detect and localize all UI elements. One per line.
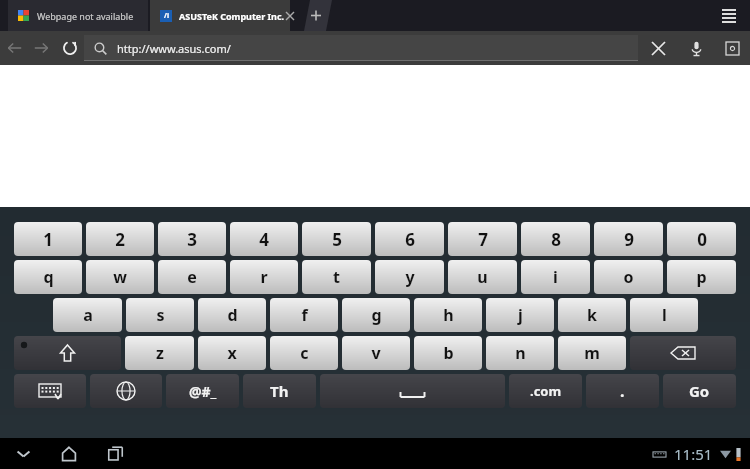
staticText: n (515, 342, 526, 364)
button[interactable]: Change language (90, 374, 162, 408)
button[interactable]: 5 (302, 222, 371, 256)
button[interactable]: 0 (667, 222, 736, 256)
button[interactable]: g (342, 298, 410, 332)
button[interactable]: x (198, 336, 266, 370)
button[interactable]: 4 (230, 222, 298, 256)
button[interactable]: b (414, 336, 482, 370)
staticText: 7 (478, 228, 488, 251)
staticText: b (443, 342, 454, 364)
button[interactable]: e (158, 260, 226, 294)
button[interactable]: Menu (718, 5, 740, 27)
staticText: 11:51 (674, 444, 713, 464)
staticText: f (301, 304, 308, 326)
button[interactable]: t (302, 260, 371, 294)
staticText: j (518, 304, 523, 326)
button[interactable]: l (630, 298, 698, 332)
staticText: z (156, 342, 164, 364)
staticText: 0 (697, 228, 707, 251)
staticText: g (371, 304, 382, 326)
button[interactable]: 6 (375, 222, 444, 256)
staticText: http://www.asus.com/ (117, 41, 231, 56)
button[interactable]: Webpage not available (8, 0, 148, 31)
button[interactable]: Recent apps (92, 438, 138, 469)
staticText: Go (689, 381, 710, 401)
button[interactable]: h (414, 298, 482, 332)
button[interactable]: Bookmarks (714, 31, 750, 65)
staticText: i (553, 266, 558, 288)
button[interactable]: 8 (521, 222, 590, 256)
staticText: h (443, 304, 454, 326)
button[interactable]: i (521, 260, 590, 294)
button[interactable]: Back (0, 31, 28, 65)
button[interactable]: Th (243, 374, 316, 408)
button[interactable]: Forward (28, 31, 56, 65)
button[interactable]: Stop (638, 31, 678, 65)
staticText: k (587, 304, 597, 326)
button[interactable]: k (558, 298, 626, 332)
button[interactable]: p (667, 260, 736, 294)
button[interactable]: c (270, 336, 338, 370)
button[interactable]: Close tab (281, 0, 299, 31)
button[interactable]: a (53, 298, 122, 332)
button[interactable]: .com (509, 374, 582, 408)
staticText: 3 (187, 228, 197, 251)
button[interactable]: d (198, 298, 266, 332)
staticText: e (187, 266, 197, 288)
staticText: d (227, 304, 238, 326)
staticText: l (662, 304, 667, 326)
button[interactable]: j (486, 298, 554, 332)
button[interactable]: w (86, 260, 154, 294)
staticText: y (405, 266, 415, 288)
button[interactable]: z (125, 336, 194, 370)
button[interactable]: u (448, 260, 517, 294)
staticText: x (227, 342, 237, 364)
staticText: s (156, 304, 165, 326)
button[interactable]: m (558, 336, 626, 370)
staticText: a (83, 304, 93, 326)
button[interactable]: 2 (86, 222, 154, 256)
button[interactable]: . (586, 374, 659, 408)
staticText: Webpage not available (37, 10, 134, 22)
button[interactable]: Go (663, 374, 736, 408)
button[interactable]: Voice search (678, 31, 714, 65)
staticText: .com (530, 382, 562, 400)
button[interactable]: @#_ (166, 374, 239, 408)
button[interactable]: s (126, 298, 194, 332)
staticText: ASUSTeK Computer Inc. (179, 10, 285, 22)
button[interactable]: v (342, 336, 410, 370)
button[interactable]: Shift (14, 336, 121, 370)
button[interactable]: n (486, 336, 554, 370)
button[interactable]: http://www.asus.com/ (84, 35, 638, 61)
staticText: r (260, 266, 268, 288)
button[interactable]: Space (320, 374, 505, 408)
staticText: m (584, 342, 600, 364)
button[interactable]: Hide keyboard (0, 438, 46, 469)
button[interactable]: 7 (448, 222, 517, 256)
staticText: w (113, 266, 127, 288)
button[interactable]: Keyboard settings (14, 374, 86, 408)
staticText: c (300, 342, 309, 364)
staticText: 4 (259, 228, 269, 251)
staticText: . (620, 380, 625, 402)
staticText: t (333, 266, 340, 288)
button[interactable]: 9 (594, 222, 663, 256)
staticText: q (43, 266, 54, 288)
button[interactable]: Backspace (630, 336, 736, 370)
button[interactable]: Home (46, 438, 92, 469)
button[interactable]: 1 (14, 222, 82, 256)
button[interactable]: New tab (300, 0, 332, 31)
staticText: 6 (405, 228, 415, 251)
staticText: Th (270, 381, 289, 401)
button[interactable]: 3 (158, 222, 226, 256)
button[interactable]: y (375, 260, 444, 294)
staticText: 9 (624, 228, 634, 251)
button[interactable]: r (230, 260, 298, 294)
staticText: /i (164, 11, 169, 21)
button[interactable]: /i (150, 0, 290, 31)
button[interactable]: q (14, 260, 82, 294)
staticText: 5 (332, 228, 342, 251)
button[interactable]: f (270, 298, 338, 332)
button[interactable]: o (594, 260, 663, 294)
staticText: p (696, 266, 707, 288)
button[interactable]: Reload (56, 31, 84, 65)
